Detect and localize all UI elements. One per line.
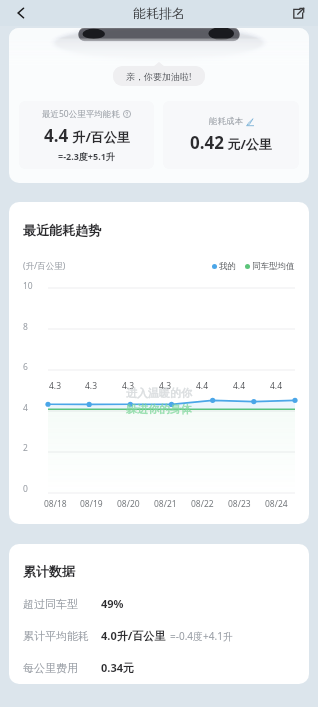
staticText: =-0.4度+4.1升 [170,629,233,643]
staticText: 0.42 [190,131,224,154]
staticText: 躲进你的身体 [126,402,192,416]
staticText: =-2.3度+5.1升 [58,150,115,162]
button[interactable]: Share [284,0,312,26]
staticText: 元/公里 [224,135,272,153]
staticText: 我的 [219,261,236,272]
staticText: 4.0升/百公里 [101,628,166,643]
staticText: 亲，你要加油啦! [126,70,192,82]
staticText: 超过同车型 [23,597,78,611]
button[interactable]: 能耗成本 [163,101,299,169]
staticText: 同车型均值 [252,261,295,272]
button[interactable]: 最近50公里平均能耗 [19,101,154,169]
staticText: 6 [23,361,42,373]
staticText: 08/20 [117,498,140,510]
staticText: 08/22 [191,498,214,510]
staticText: 0.34元 [101,660,134,675]
staticText: 4.4 [196,380,209,392]
staticText: 4.3 [122,380,135,392]
staticText: 08/23 [228,498,251,510]
staticText: 08/18 [44,498,67,510]
staticText: 49% [101,596,124,611]
staticText: 累计数据 [23,563,75,579]
staticText: 0 [23,483,42,495]
staticText: 8 [23,321,42,333]
staticText: 每公里费用 [23,661,78,675]
staticText: 最近能耗趋势 [23,222,101,238]
staticText: 进入温暖的你 [126,386,192,400]
staticText: 4.3 [49,380,62,392]
staticText: 能耗成本 [209,116,243,127]
staticText: 08/21 [154,498,177,510]
staticText: 4.4 [233,380,246,392]
staticText: 累计平均能耗 [23,629,89,643]
staticText: 4.3 [159,380,172,392]
staticText: 2 [23,442,42,454]
staticText: 4.3 [85,380,98,392]
staticText: 升/百公里 [69,128,130,146]
button[interactable]: Back [6,0,36,26]
staticText: (升/百公里) [23,260,66,272]
staticText: 4.4 [44,124,69,147]
staticText: 能耗排名 [133,5,185,21]
staticText: 08/19 [80,498,103,510]
staticText: 10 [23,280,42,292]
staticText: 4.4 [270,380,283,392]
staticText: 08/24 [265,498,288,510]
staticText: 最近50公里平均能耗 [42,108,120,120]
staticText: 4 [23,402,42,414]
